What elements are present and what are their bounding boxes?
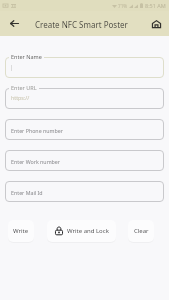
- staticText: 71%: [118, 3, 128, 9]
- button[interactable]: Enter Mail Id: [5, 181, 164, 202]
- staticText: 8:51 AM: [145, 2, 166, 9]
- staticText: Enter Work number: [11, 158, 61, 165]
- button[interactable]: Enter Phone number: [5, 119, 164, 140]
- staticText: Write: [13, 227, 29, 235]
- staticText: Write and Lock: [67, 227, 109, 235]
- button[interactable]: Write and Lock: [47, 220, 116, 242]
- staticText: Enter Mail Id: [11, 189, 43, 196]
- button[interactable]: Home: [146, 13, 167, 34]
- button[interactable]: Enter Work number: [5, 150, 164, 171]
- button[interactable]: Write: [8, 220, 34, 242]
- staticText: Create NFC Smart Poster: [35, 19, 128, 30]
- staticText: Clear: [134, 227, 149, 235]
- staticText: Enter Phone number: [11, 127, 63, 134]
- button[interactable]: Clear: [128, 220, 154, 242]
- staticText: Enter URL: [11, 84, 37, 91]
- button[interactable]: Back: [4, 13, 25, 34]
- staticText: Enter Name: [11, 53, 42, 60]
- staticText: https://: [11, 94, 30, 101]
- button[interactable]: [5, 88, 164, 109]
- button[interactable]: [5, 57, 164, 78]
